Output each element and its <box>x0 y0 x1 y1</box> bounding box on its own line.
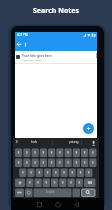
staticText: young <box>69 140 79 144</box>
staticText: $ <box>16 140 18 144</box>
staticText: Your title goes here <box>22 54 52 58</box>
staticText: Search Notes <box>33 6 79 16</box>
staticText: English <box>46 190 55 194</box>
staticText: hub <box>31 140 37 144</box>
button[interactable] <box>83 123 94 134</box>
staticText: 8 Jun 2021 19:04 <box>22 58 42 61</box>
button[interactable] <box>15 38 97 51</box>
button[interactable]: Your title goes here <box>15 51 97 63</box>
staticText: 8:21 PM <box>17 33 28 37</box>
